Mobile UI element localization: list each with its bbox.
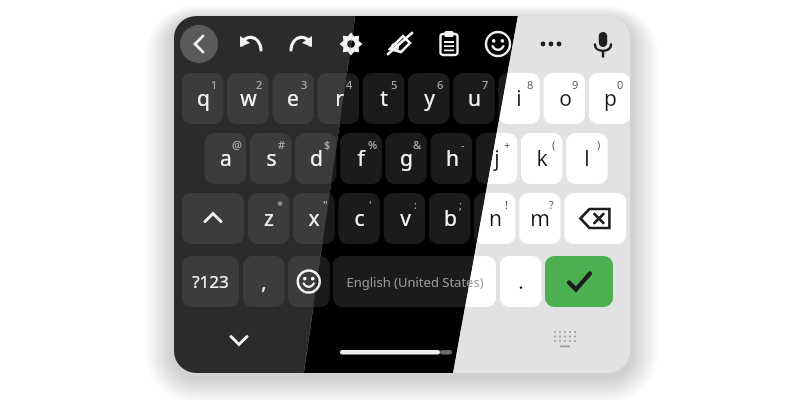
staticText: e bbox=[287, 84, 299, 113]
button[interactable]: t bbox=[363, 73, 405, 124]
staticText: , bbox=[261, 268, 267, 295]
staticText: h bbox=[446, 144, 459, 173]
button[interactable]: z bbox=[248, 193, 290, 244]
button[interactable]: Clipboard bbox=[428, 23, 470, 65]
staticText: 3 bbox=[301, 77, 308, 91]
staticText: z bbox=[264, 204, 274, 233]
button[interactable]: d bbox=[295, 133, 337, 184]
button[interactable]: Switch keyboard bbox=[545, 320, 585, 360]
button[interactable]: l bbox=[566, 133, 608, 184]
staticText: % bbox=[368, 137, 378, 151]
staticText: l bbox=[584, 144, 590, 173]
button[interactable]: English (United States) bbox=[333, 256, 496, 307]
staticText: x bbox=[308, 204, 320, 233]
button[interactable]: Emoji bbox=[288, 256, 330, 307]
staticText: v bbox=[400, 204, 411, 233]
staticText: . bbox=[518, 268, 524, 295]
staticText: ) bbox=[597, 137, 601, 151]
button[interactable]: Undo bbox=[230, 23, 272, 65]
staticText: y bbox=[424, 84, 435, 113]
staticText: o bbox=[559, 84, 572, 113]
staticText: 0 bbox=[617, 77, 624, 91]
button[interactable]: Redo bbox=[280, 23, 322, 65]
button[interactable]: p bbox=[589, 73, 631, 124]
staticText: English (United States) bbox=[346, 273, 484, 291]
staticText: - bbox=[461, 137, 465, 151]
staticText: 9 bbox=[572, 77, 579, 91]
staticText: t bbox=[380, 84, 388, 113]
button[interactable]: b bbox=[429, 193, 471, 244]
button[interactable]: Back bbox=[178, 23, 220, 65]
staticText: 7 bbox=[482, 77, 489, 91]
staticText: q bbox=[197, 84, 210, 113]
staticText: p bbox=[604, 84, 617, 113]
button[interactable]: g bbox=[385, 133, 427, 184]
staticText: c bbox=[354, 204, 365, 233]
button[interactable]: Hide keyboard bbox=[219, 320, 259, 360]
staticText: 6 bbox=[437, 77, 444, 91]
button[interactable]: w bbox=[227, 73, 269, 124]
button[interactable]: h bbox=[431, 133, 473, 184]
button[interactable]: r bbox=[318, 73, 360, 124]
button[interactable]: j bbox=[476, 133, 518, 184]
staticText: ?123 bbox=[192, 270, 229, 293]
button[interactable]: Shift bbox=[182, 193, 244, 244]
staticText: f bbox=[357, 144, 365, 173]
button[interactable]: More options bbox=[530, 23, 572, 65]
button[interactable]: a bbox=[205, 133, 247, 184]
staticText: g bbox=[400, 144, 413, 173]
button[interactable]: ?123 bbox=[182, 256, 239, 307]
staticText: m bbox=[530, 204, 550, 233]
button[interactable]: q bbox=[182, 73, 224, 124]
staticText: 8 bbox=[527, 77, 534, 91]
staticText: @ bbox=[232, 137, 242, 151]
staticText: u bbox=[468, 84, 481, 113]
staticText: ? bbox=[549, 197, 554, 211]
staticText: " bbox=[323, 197, 328, 211]
staticText: ' bbox=[369, 197, 372, 211]
button[interactable]: y bbox=[408, 73, 450, 124]
staticText: ; bbox=[459, 197, 462, 211]
button[interactable]: e bbox=[272, 73, 314, 124]
button[interactable]: o bbox=[544, 73, 586, 124]
button[interactable]: Voice input bbox=[582, 23, 624, 65]
button[interactable]: u bbox=[453, 73, 495, 124]
staticText: & bbox=[413, 137, 422, 151]
staticText: 4 bbox=[346, 77, 353, 91]
staticText: i bbox=[516, 84, 522, 113]
button[interactable]: f bbox=[340, 133, 382, 184]
button[interactable]: Emoji bbox=[477, 23, 519, 65]
staticText: 2 bbox=[256, 77, 263, 91]
staticText: # bbox=[278, 137, 286, 151]
staticText: 1 bbox=[211, 77, 218, 91]
staticText: a bbox=[220, 144, 232, 173]
button[interactable]: v bbox=[384, 193, 426, 244]
staticText: d bbox=[310, 144, 323, 173]
staticText: ( bbox=[552, 137, 556, 151]
button[interactable]: Disable stickers bbox=[379, 23, 421, 65]
staticText: : bbox=[414, 197, 417, 211]
button[interactable]: k bbox=[521, 133, 563, 184]
staticText: b bbox=[444, 204, 457, 233]
button[interactable]: Backspace bbox=[564, 193, 626, 244]
staticText: * bbox=[277, 197, 284, 211]
button[interactable]: Enter bbox=[545, 256, 613, 307]
staticText: n bbox=[489, 204, 502, 233]
staticText: 5 bbox=[391, 77, 398, 91]
button[interactable]: s bbox=[250, 133, 292, 184]
button[interactable]: c bbox=[338, 193, 380, 244]
staticText: r bbox=[335, 84, 344, 113]
button[interactable]: n bbox=[474, 193, 516, 244]
staticText: w bbox=[240, 84, 257, 113]
staticText: $ bbox=[324, 137, 331, 151]
button[interactable]: Settings bbox=[330, 23, 372, 65]
staticText: ! bbox=[505, 197, 508, 211]
button[interactable]: x bbox=[293, 193, 335, 244]
staticText: + bbox=[504, 137, 511, 151]
staticText: s bbox=[266, 144, 277, 173]
button[interactable]: m bbox=[519, 193, 561, 244]
button[interactable]: , bbox=[243, 256, 285, 307]
button[interactable]: i bbox=[498, 73, 540, 124]
staticText: k bbox=[536, 144, 548, 173]
button[interactable]: . bbox=[500, 256, 542, 307]
